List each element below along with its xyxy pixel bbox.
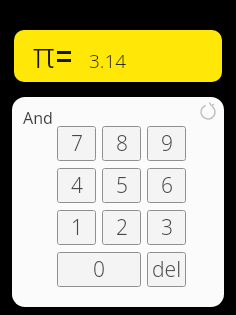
staticText: And bbox=[23, 107, 53, 129]
button[interactable]: π bbox=[14, 30, 222, 82]
staticText: 6 bbox=[161, 171, 173, 200]
staticText: 8 bbox=[116, 129, 128, 158]
button[interactable]: 8 bbox=[102, 126, 141, 161]
button[interactable]: 5 bbox=[102, 168, 141, 203]
staticText: 4 bbox=[71, 171, 83, 200]
staticText: 0 bbox=[93, 255, 105, 284]
staticText: π bbox=[33, 31, 55, 79]
staticText: del bbox=[152, 255, 182, 284]
button[interactable]: 0 bbox=[57, 252, 141, 287]
staticText: 5 bbox=[116, 171, 128, 200]
button[interactable]: 6 bbox=[147, 168, 186, 203]
staticText: 7 bbox=[71, 129, 83, 158]
staticText: 3.14 bbox=[89, 48, 127, 74]
button[interactable] bbox=[200, 103, 218, 121]
button[interactable]: 1 bbox=[57, 210, 96, 245]
button[interactable]: 4 bbox=[57, 168, 96, 203]
staticText: 9 bbox=[161, 129, 173, 158]
staticText: 1 bbox=[71, 213, 83, 242]
button[interactable]: 7 bbox=[57, 126, 96, 161]
button[interactable]: 3 bbox=[147, 210, 186, 245]
button[interactable]: del bbox=[147, 252, 186, 287]
button[interactable]: 9 bbox=[147, 126, 186, 161]
button[interactable]: 2 bbox=[102, 210, 141, 245]
staticText: 3 bbox=[161, 213, 173, 242]
staticText: 2 bbox=[116, 213, 128, 242]
